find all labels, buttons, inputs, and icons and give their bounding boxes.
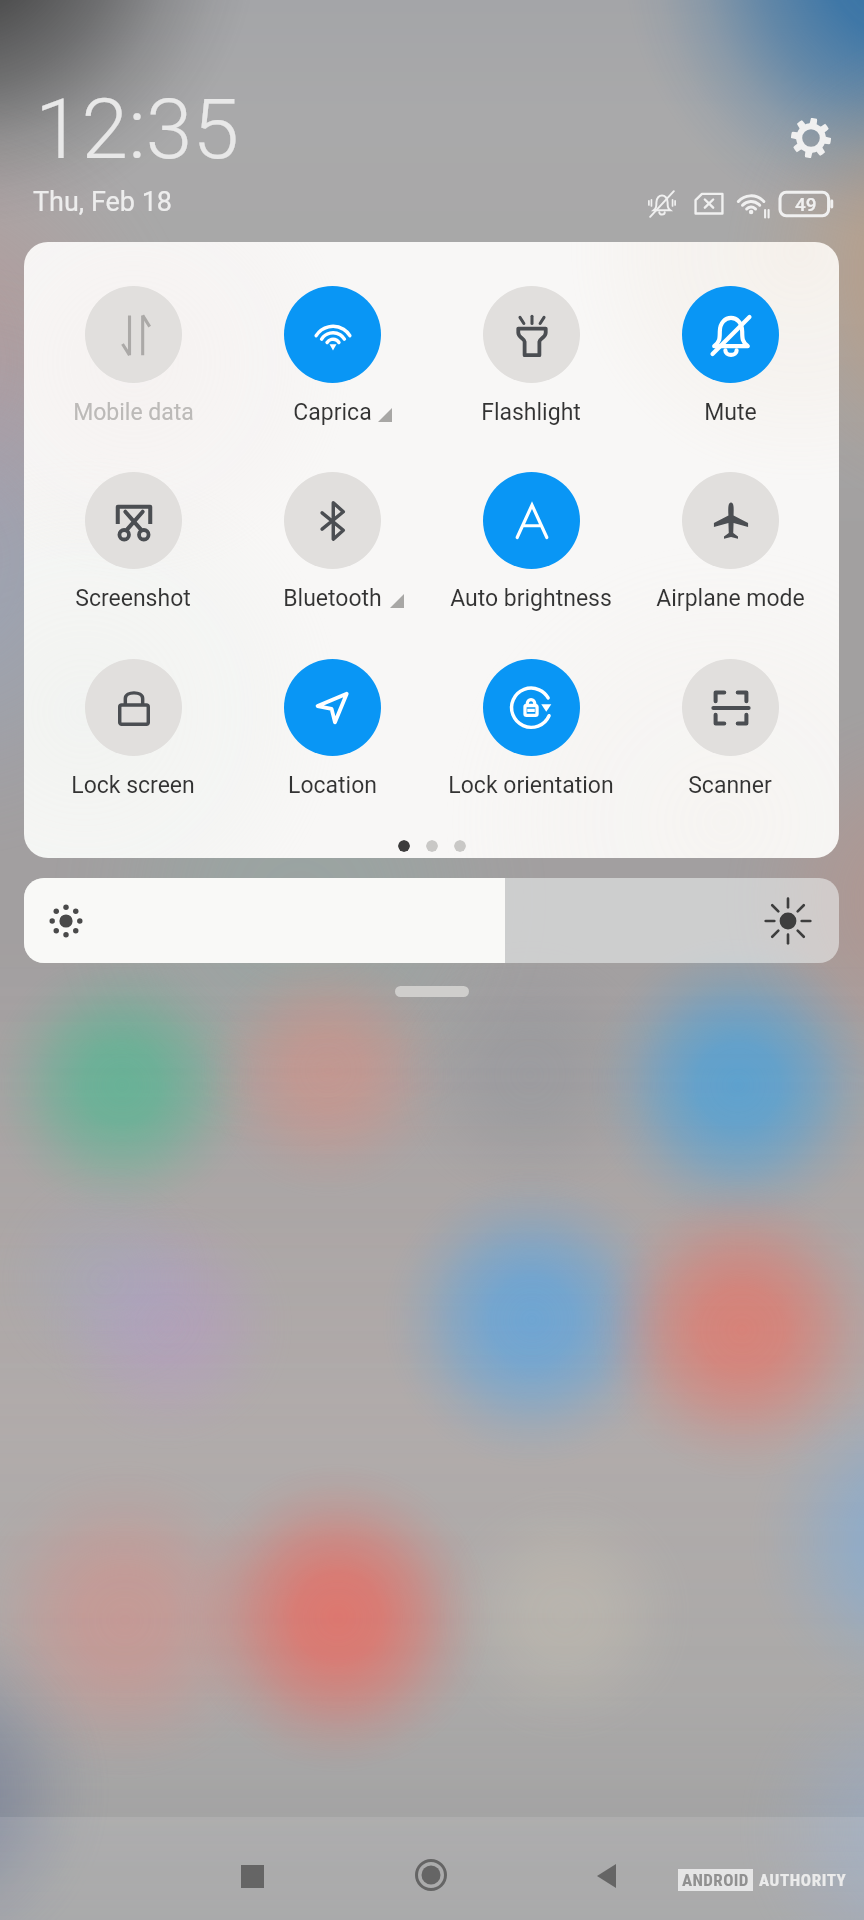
staticText: AUTHORITY — [759, 1870, 847, 1890]
staticText: Bluetooth — [283, 585, 382, 612]
button[interactable]: Auto brightness — [432, 472, 630, 632]
staticText: Mobile data — [73, 399, 194, 426]
button[interactable]: Brightness — [24, 878, 839, 963]
staticText: 12:35 — [35, 80, 240, 178]
staticText: Flashlight — [481, 399, 581, 426]
staticText: ANDROID — [682, 1870, 749, 1890]
staticText: Airplane mode — [656, 585, 805, 612]
button[interactable]: Location — [233, 659, 431, 819]
button[interactable]: Scanner — [631, 659, 829, 819]
button[interactable]: Lock orientation — [432, 659, 630, 819]
staticText: Thu, Feb 18 — [33, 186, 173, 218]
button[interactable]: Bluetooth — [233, 472, 431, 632]
button[interactable]: Screenshot — [34, 472, 232, 632]
staticText: Auto brightness — [450, 585, 612, 612]
staticText: Scanner — [688, 772, 772, 799]
staticText: Lock screen — [71, 772, 195, 799]
button[interactable]: Home — [403, 1847, 459, 1903]
button[interactable]: Lock screen — [34, 659, 232, 819]
button[interactable]: Settings — [781, 108, 841, 168]
button[interactable]: Recents — [224, 1848, 280, 1904]
staticText: Caprica — [293, 399, 372, 426]
staticText: Mute — [704, 399, 757, 426]
button[interactable]: Airplane mode — [631, 472, 829, 632]
button[interactable]: Caprica — [233, 286, 431, 446]
button[interactable]: Mute — [631, 286, 829, 446]
staticText: 49 — [795, 193, 817, 215]
button[interactable]: Page 3 — [454, 840, 466, 852]
button[interactable]: Flashlight — [432, 286, 630, 446]
button[interactable]: Mobile data — [34, 286, 232, 446]
staticText: Screenshot — [75, 585, 191, 612]
button[interactable]: Page 1 — [398, 840, 410, 852]
button[interactable]: Page 2 — [426, 840, 438, 852]
button[interactable]: Back — [578, 1848, 634, 1904]
staticText: Lock orientation — [448, 772, 614, 799]
staticText: Location — [288, 772, 377, 799]
